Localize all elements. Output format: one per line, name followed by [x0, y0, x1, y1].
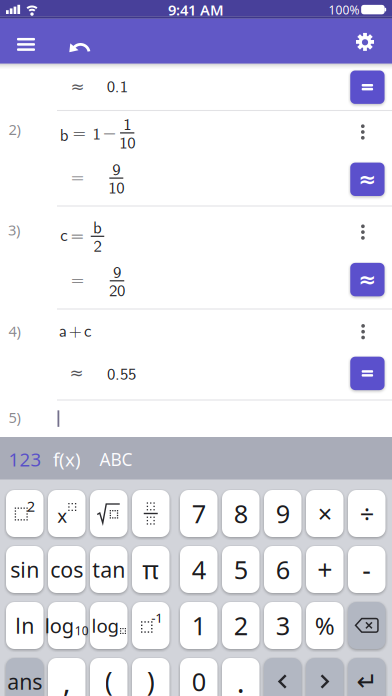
- staticText: 5: [234, 553, 248, 586]
- staticText: a: [59, 317, 67, 342]
- staticText: c: [84, 317, 91, 342]
- staticText: 123: [8, 447, 41, 472]
- button[interactable]: π: [132, 546, 169, 593]
- staticText: 3: [276, 609, 290, 642]
- button[interactable]: ≈: [350, 263, 384, 296]
- button[interactable]: %: [306, 602, 343, 649]
- button[interactable]: ,: [48, 658, 85, 696]
- button[interactable]: [350, 70, 384, 104]
- button[interactable]: 6: [264, 546, 301, 593]
- button[interactable]: 7: [180, 490, 217, 537]
- staticText: 7: [192, 497, 206, 530]
- button[interactable]: ln: [6, 602, 43, 649]
- button[interactable]: 2: [6, 490, 43, 537]
- staticText: π: [142, 553, 159, 586]
- staticText: sin: [10, 555, 39, 584]
- staticText: =: [73, 119, 86, 143]
- button[interactable]: log: [48, 602, 85, 649]
- button[interactable]: [306, 658, 343, 696]
- button[interactable]: [353, 120, 373, 144]
- button[interactable]: x: [48, 490, 85, 537]
- staticText: =: [71, 163, 84, 188]
- staticText: ln: [15, 611, 34, 640]
- button[interactable]: 1: [180, 602, 217, 649]
- staticText: 9: [276, 497, 290, 530]
- staticText: f(x): [53, 447, 81, 472]
- button[interactable]: [132, 490, 169, 537]
- staticText: b: [93, 214, 102, 239]
- button[interactable]: 3: [264, 602, 301, 649]
- staticText: 1: [123, 111, 131, 135]
- button[interactable]: 0: [180, 658, 217, 696]
- staticText: 0.1: [107, 73, 128, 97]
- staticText: tan: [92, 555, 125, 584]
- staticText: ≈: [358, 267, 376, 292]
- button[interactable]: 5: [222, 546, 259, 593]
- button[interactable]: tan: [90, 546, 127, 593]
- staticText: ): [147, 664, 155, 696]
- button[interactable]: [0, 400, 392, 437]
- button[interactable]: -1: [132, 602, 169, 649]
- button[interactable]: +: [306, 546, 343, 593]
- staticText: ans: [7, 667, 42, 696]
- button[interactable]: [11, 29, 41, 59]
- button[interactable]: 2: [222, 602, 259, 649]
- button[interactable]: 123: [8, 447, 41, 472]
- staticText: 1: [192, 609, 206, 642]
- button[interactable]: [353, 220, 373, 244]
- button[interactable]: sin: [6, 546, 43, 593]
- staticText: 5): [8, 407, 20, 427]
- staticText: 3): [8, 220, 20, 240]
- button[interactable]: f(x): [53, 447, 81, 472]
- button[interactable]: [0, 309, 392, 400]
- button[interactable]: log: [90, 602, 127, 649]
- staticText: 2): [8, 120, 20, 139]
- staticText: 1: [93, 120, 101, 145]
- button[interactable]: -: [348, 546, 385, 593]
- button[interactable]: ans: [6, 658, 43, 696]
- staticText: -1: [151, 609, 163, 626]
- staticText: 0: [192, 665, 206, 696]
- staticText: log: [45, 612, 74, 639]
- button[interactable]: [66, 32, 92, 58]
- button[interactable]: ×: [306, 490, 343, 537]
- button[interactable]: 9: [264, 490, 301, 537]
- staticText: ×: [318, 497, 332, 530]
- staticText: ,: [63, 662, 71, 696]
- staticText: 2: [27, 496, 35, 516]
- staticText: x: [57, 503, 67, 528]
- button[interactable]: ÷: [348, 490, 385, 537]
- staticText: ≈: [69, 363, 83, 383]
- button[interactable]: [348, 602, 385, 649]
- staticText: −: [103, 119, 116, 143]
- staticText: ABC: [99, 448, 132, 471]
- staticText: b: [60, 121, 69, 146]
- staticText: ≈: [71, 77, 85, 96]
- button[interactable]: ): [132, 658, 169, 696]
- staticText: 10: [75, 622, 89, 638]
- staticText: 4): [8, 321, 20, 341]
- staticText: 10: [108, 174, 124, 199]
- button[interactable]: [354, 31, 376, 53]
- button[interactable]: cos: [48, 546, 85, 593]
- button[interactable]: 4: [180, 546, 217, 593]
- button[interactable]: [264, 658, 301, 696]
- staticText: 8: [234, 497, 248, 530]
- button[interactable]: [0, 206, 392, 309]
- button[interactable]: ABC: [99, 448, 132, 471]
- button[interactable]: [0, 110, 392, 206]
- staticText: 20: [109, 277, 125, 301]
- staticText: .: [237, 662, 245, 696]
- button[interactable]: [0, 63, 392, 110]
- button[interactable]: ≈: [350, 163, 384, 196]
- button[interactable]: [90, 490, 127, 537]
- button[interactable]: (: [90, 658, 127, 696]
- button[interactable]: [353, 320, 373, 344]
- button[interactable]: ↵: [348, 658, 385, 696]
- staticText: 9:41 AM: [168, 0, 224, 19]
- button[interactable]: 8: [222, 490, 259, 537]
- button[interactable]: [350, 357, 384, 390]
- button[interactable]: .: [222, 658, 259, 696]
- staticText: %: [315, 610, 335, 641]
- staticText: c: [60, 221, 67, 246]
